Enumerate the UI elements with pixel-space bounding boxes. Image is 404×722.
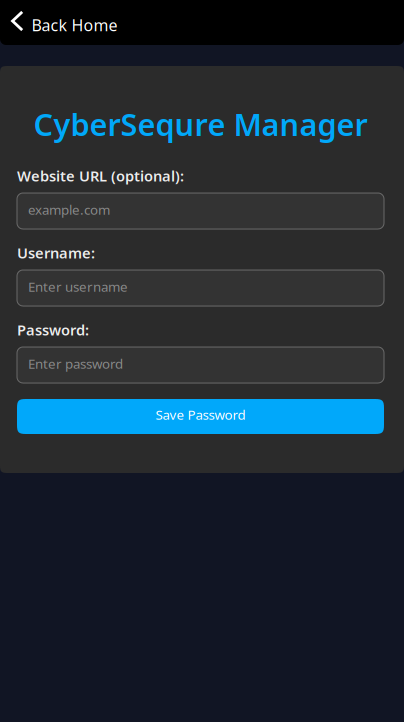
button[interactable]: example.com — [17, 193, 384, 229]
staticText: Website URL (optional): — [17, 166, 184, 185]
staticText: CyberSequre Manager — [33, 104, 367, 144]
button[interactable]: Back Home — [0, 0, 404, 45]
staticText: Username: — [17, 243, 95, 262]
staticText: Enter username — [28, 278, 128, 295]
staticText: Password: — [17, 320, 89, 339]
button[interactable]: Save Password — [17, 399, 384, 434]
staticText: Save Password — [155, 406, 245, 423]
staticText: Back Home — [31, 14, 117, 36]
staticText: example.com — [28, 201, 110, 218]
button[interactable]: Enter password — [17, 347, 384, 383]
staticText: Enter password — [28, 355, 123, 372]
button[interactable]: Enter username — [17, 270, 384, 306]
